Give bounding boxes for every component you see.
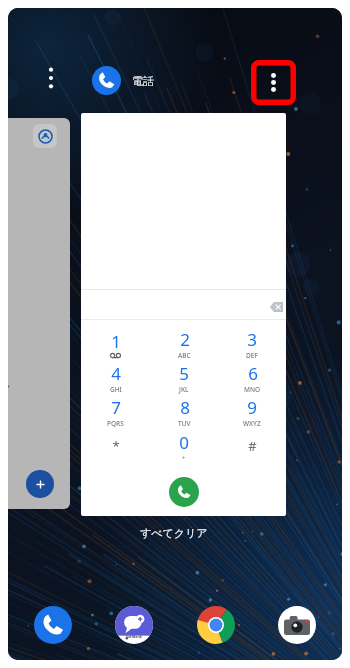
button[interactable]: すべてクリア	[134, 524, 214, 542]
staticText: GHI	[110, 385, 122, 394]
staticText: 0	[179, 431, 189, 454]
button[interactable]: Camera	[278, 606, 316, 644]
button[interactable]: 6	[218, 361, 286, 395]
staticText: 9	[247, 396, 257, 419]
staticText: *	[112, 437, 120, 455]
button[interactable]: 4	[81, 361, 150, 395]
staticText: +	[182, 454, 186, 462]
button[interactable]: Messages	[115, 606, 153, 644]
button[interactable]: 7	[81, 395, 150, 429]
staticText: ABC	[178, 351, 191, 360]
button[interactable]: Call	[169, 477, 199, 507]
button[interactable]: 5	[150, 361, 218, 395]
staticText: 4	[111, 362, 121, 385]
staticText: MNO	[244, 385, 261, 394]
staticText: 電話	[132, 74, 154, 88]
staticText: PQRS	[107, 419, 124, 428]
button[interactable]: Phone	[34, 606, 72, 644]
button[interactable]: Add contact	[26, 470, 54, 498]
staticText: 6	[248, 362, 258, 385]
button[interactable]: More options	[251, 60, 296, 105]
button[interactable]: 2	[150, 327, 218, 361]
staticText: #	[248, 437, 257, 455]
button[interactable]: Delete	[81, 113, 286, 516]
staticText: 8	[180, 396, 190, 419]
button[interactable]: 3	[218, 327, 286, 361]
button[interactable]: 1	[81, 327, 150, 361]
button[interactable]: Delete	[261, 296, 286, 318]
button[interactable]: #	[218, 429, 286, 463]
button[interactable]: 8	[150, 395, 218, 429]
staticText: 2	[180, 328, 190, 351]
staticText: TUV	[178, 419, 191, 428]
button[interactable]: More options	[41, 62, 61, 94]
staticText: SoftBank	[126, 634, 142, 639]
button[interactable]: 9	[218, 395, 286, 429]
staticText: WXYZ	[243, 419, 261, 428]
staticText: すべてクリア	[140, 526, 208, 540]
staticText: JKL	[179, 385, 189, 394]
staticText: 3	[247, 328, 257, 351]
button[interactable]: 0	[150, 429, 218, 463]
staticText: 5	[179, 362, 189, 385]
staticText: 7	[111, 396, 121, 419]
staticText: さん	[8, 376, 11, 390]
button[interactable]: Chrome	[197, 606, 235, 644]
button[interactable]: Phone app	[92, 66, 121, 95]
staticText: DEF	[246, 351, 258, 360]
button[interactable]: *	[81, 429, 150, 463]
staticText: 1	[111, 330, 121, 353]
button[interactable]: さん	[8, 118, 70, 509]
